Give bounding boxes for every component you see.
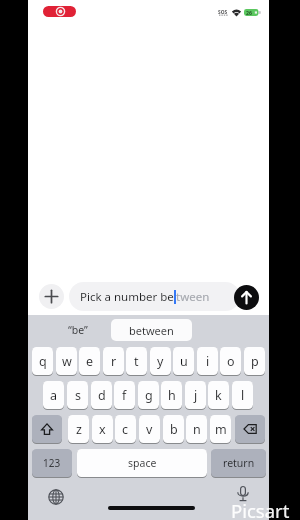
button[interactable]: x xyxy=(92,415,113,443)
button[interactable]: i xyxy=(197,347,218,375)
staticText: “be” xyxy=(68,323,88,337)
staticText: tween xyxy=(176,289,210,305)
button[interactable]: b xyxy=(163,415,184,443)
button[interactable]: Pick a number be xyxy=(69,282,240,311)
button[interactable]: z xyxy=(68,415,89,443)
staticText: m xyxy=(215,421,227,438)
button[interactable]: d xyxy=(91,381,112,409)
staticText: u xyxy=(180,353,188,370)
button[interactable]: space xyxy=(77,449,207,477)
staticText: s xyxy=(75,387,81,404)
button[interactable]: y xyxy=(150,347,171,375)
staticText: 123 xyxy=(43,456,61,470)
button[interactable] xyxy=(48,489,64,505)
button[interactable] xyxy=(43,6,76,17)
button[interactable]: n xyxy=(186,415,207,443)
staticText: b xyxy=(170,421,178,438)
staticText: SOS xyxy=(218,9,228,16)
staticText: y xyxy=(157,353,164,370)
staticText: x xyxy=(99,421,106,438)
button[interactable]: q xyxy=(32,347,53,375)
button[interactable]: g xyxy=(138,381,159,409)
staticText: d xyxy=(98,387,106,404)
staticText: t xyxy=(134,353,139,370)
button[interactable]: f xyxy=(114,381,135,409)
button[interactable]: j xyxy=(185,381,206,409)
staticText: i xyxy=(206,353,210,370)
staticText: Pick a number be xyxy=(80,289,174,305)
staticText: c xyxy=(122,421,129,438)
button[interactable]: e xyxy=(79,347,100,375)
button[interactable]: c xyxy=(115,415,136,443)
button[interactable] xyxy=(234,285,259,310)
staticText: h xyxy=(168,387,176,404)
button[interactable]: s xyxy=(67,381,88,409)
button[interactable]: “be” xyxy=(48,319,108,341)
button[interactable]: between xyxy=(111,319,192,341)
button[interactable]: o xyxy=(220,347,241,375)
staticText: 26 xyxy=(246,9,252,16)
staticText: e xyxy=(86,353,94,370)
staticText: between xyxy=(129,323,174,338)
button[interactable]: m xyxy=(210,415,231,443)
button[interactable] xyxy=(32,415,62,443)
button[interactable] xyxy=(236,486,250,504)
staticText: Picsart xyxy=(231,498,290,520)
staticText: w xyxy=(62,353,72,370)
button[interactable]: h xyxy=(161,381,182,409)
staticText: l xyxy=(241,387,245,404)
staticText: p xyxy=(251,353,259,370)
staticText: q xyxy=(39,353,47,370)
staticText: z xyxy=(76,421,82,438)
button[interactable]: return xyxy=(211,449,266,477)
staticText: a xyxy=(50,387,58,404)
staticText: r xyxy=(111,353,117,370)
staticText: v xyxy=(146,421,153,438)
button[interactable]: r xyxy=(103,347,124,375)
staticText: space xyxy=(128,456,157,470)
staticText: j xyxy=(194,387,198,404)
button[interactable]: 123 xyxy=(32,449,72,477)
button[interactable]: t xyxy=(126,347,147,375)
staticText: n xyxy=(193,421,201,438)
button[interactable]: p xyxy=(244,347,265,375)
button[interactable]: w xyxy=(56,347,77,375)
button[interactable]: a xyxy=(43,381,64,409)
button[interactable]: u xyxy=(173,347,194,375)
staticText: f xyxy=(122,387,127,404)
staticText: return xyxy=(223,456,255,470)
button[interactable]: l xyxy=(232,381,253,409)
button[interactable] xyxy=(235,415,265,443)
staticText: k xyxy=(215,387,222,404)
staticText: o xyxy=(227,353,235,370)
button[interactable] xyxy=(39,284,64,309)
staticText: g xyxy=(145,387,153,404)
button[interactable]: k xyxy=(208,381,229,409)
button[interactable]: v xyxy=(139,415,160,443)
